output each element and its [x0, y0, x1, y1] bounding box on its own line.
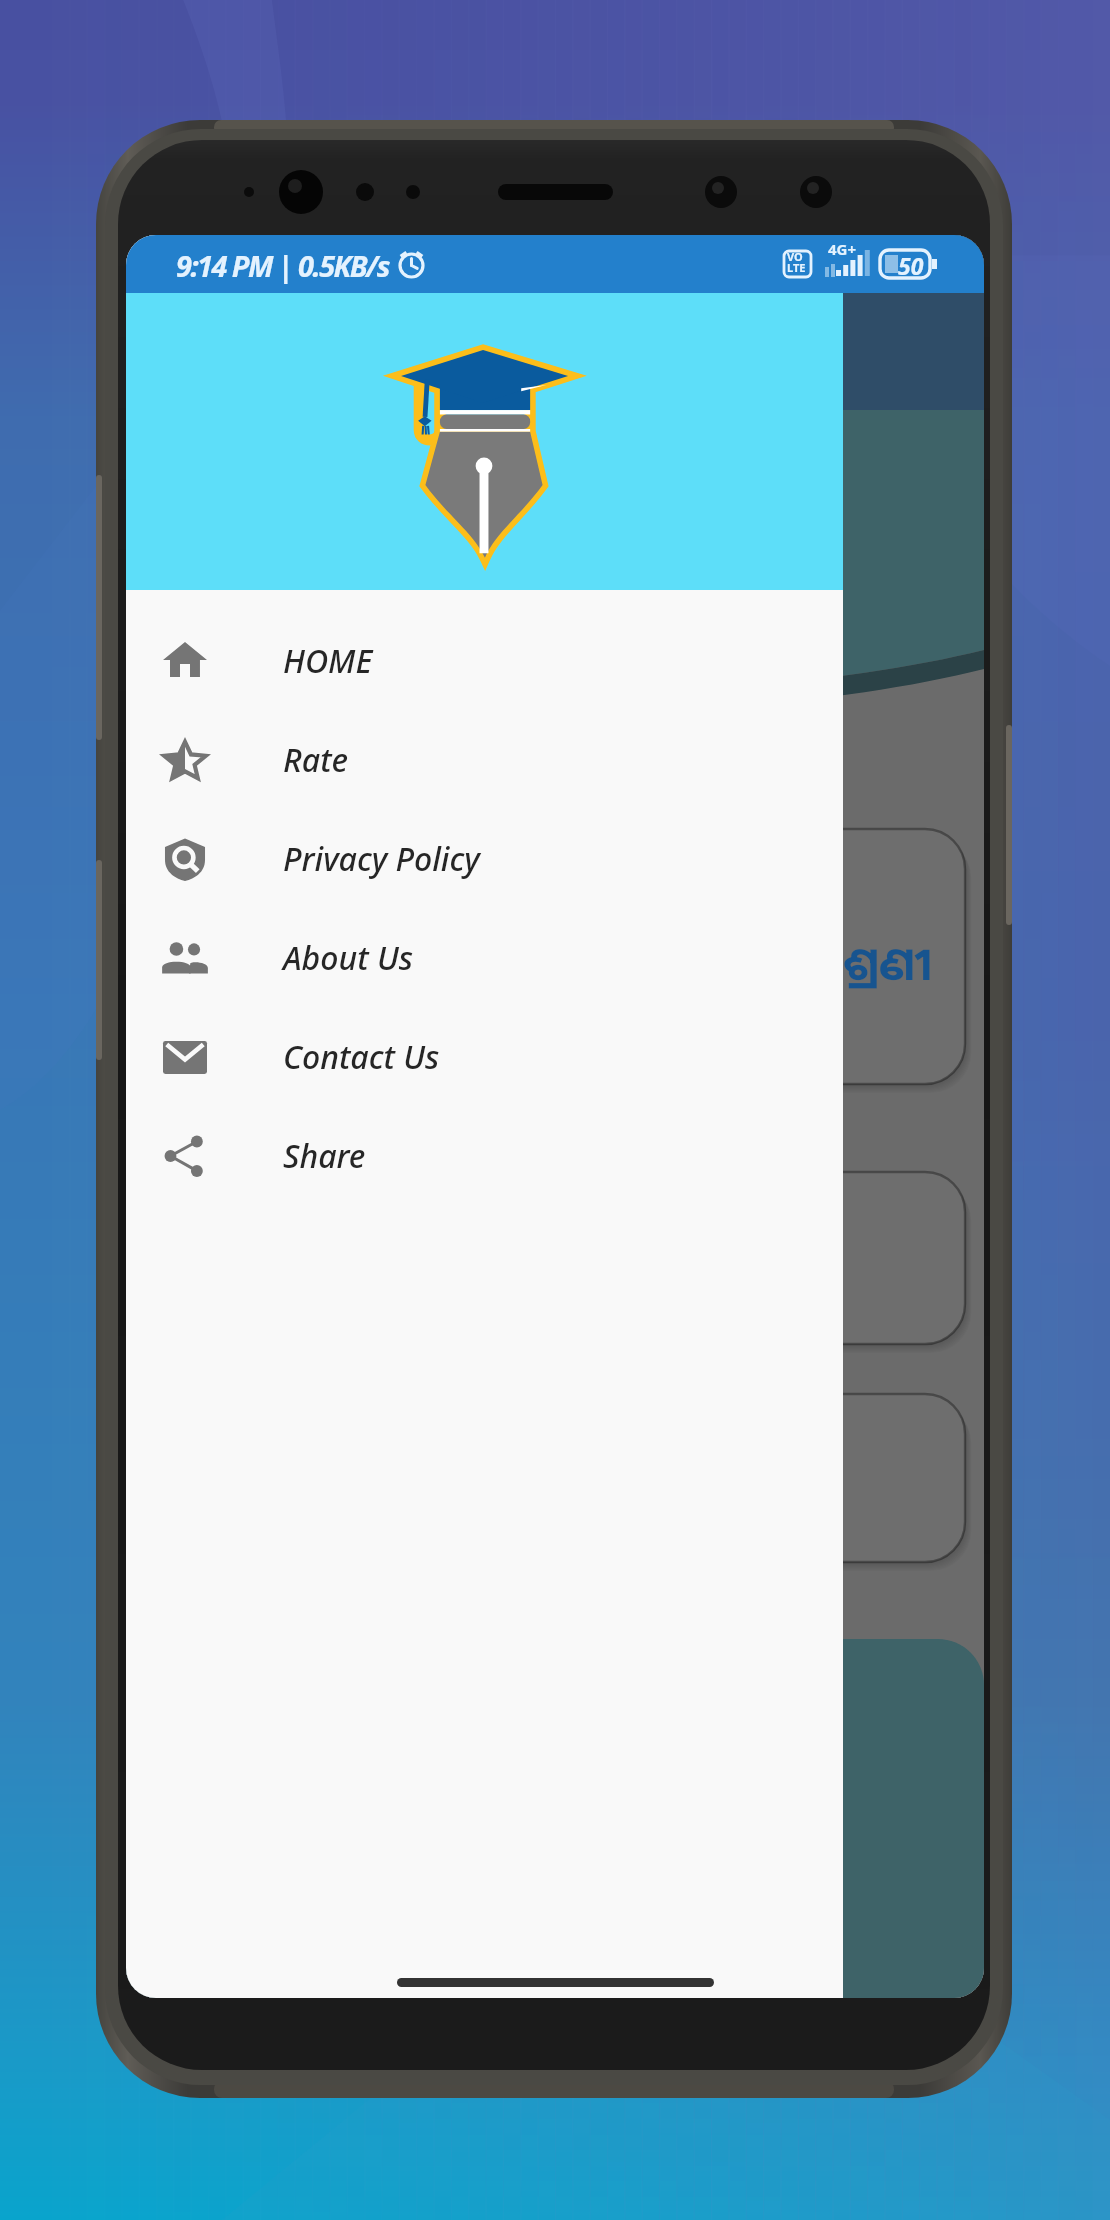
button[interactable]: App logo: [126, 293, 843, 590]
staticText: ପଞ୍ଚମ ଶ୍ରେଣୀ: [698, 931, 933, 994]
staticText: 4G+: [828, 239, 857, 259]
button[interactable]: About Us: [126, 908, 843, 1007]
staticText: Rate: [283, 738, 349, 782]
staticText: 50: [898, 250, 924, 281]
button[interactable]: Share: [126, 1106, 843, 1205]
button[interactable]: Rate: [126, 710, 843, 809]
staticText: Contact Us: [283, 1035, 440, 1079]
staticText: About Us: [283, 936, 413, 980]
staticText: 9:14 PM | 0.5KB/s: [176, 246, 389, 285]
staticText: HOME: [283, 639, 373, 683]
button[interactable]: HOME: [126, 611, 843, 710]
button[interactable]: Privacy Policy: [126, 809, 843, 908]
staticText: Share: [283, 1134, 366, 1178]
button[interactable]: Contact Us: [126, 1007, 843, 1106]
staticText: VO LTE: [787, 249, 806, 276]
staticText: Privacy Policy: [283, 837, 480, 881]
